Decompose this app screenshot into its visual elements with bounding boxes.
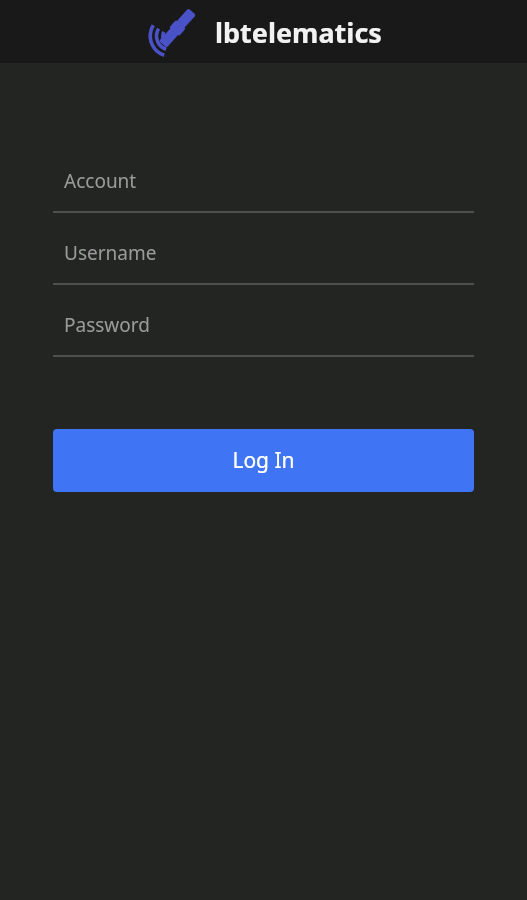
staticText: Log In <box>232 446 295 475</box>
staticText: lbtelematics <box>215 14 382 51</box>
button[interactable]: Log In <box>53 429 474 492</box>
button[interactable]: Password <box>53 295 474 367</box>
staticText: Account <box>64 168 137 194</box>
button[interactable]: Username <box>53 223 474 295</box>
staticText: Username <box>64 240 157 266</box>
button[interactable]: Account <box>53 151 474 223</box>
staticText: Password <box>64 312 150 338</box>
other: lbtelematics satellite logo <box>145 7 203 57</box>
